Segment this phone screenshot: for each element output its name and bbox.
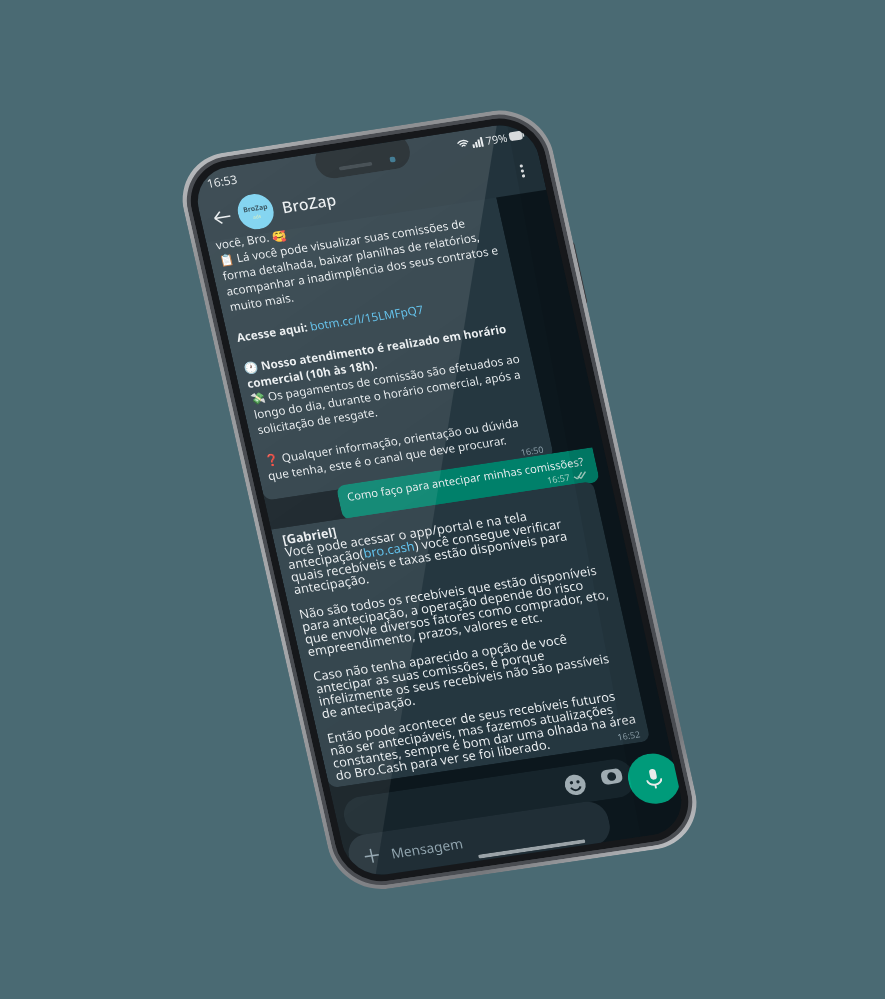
button[interactable]: Back xyxy=(204,200,239,234)
button[interactable]: [Gabriel] Você pode acessar o app/portal… xyxy=(271,481,650,788)
staticText: [Gabriel] Você pode acessar o app/portal… xyxy=(280,485,642,784)
staticText: Mensagem xyxy=(389,834,465,862)
staticText: 79% xyxy=(484,130,509,148)
staticText: 16:53 xyxy=(205,171,239,191)
staticText: BroZap xyxy=(280,189,338,218)
button[interactable]: BroZap xyxy=(234,191,277,232)
staticText: ads xyxy=(252,213,263,221)
staticText: 16:57 xyxy=(546,471,572,486)
staticText: 16:50 xyxy=(519,443,545,458)
button[interactable]: More options xyxy=(505,155,539,186)
staticText: Como faço para antecipar minhas comissõe… xyxy=(345,454,585,504)
button[interactable]: Como faço para antecipar minhas comissõe… xyxy=(336,447,600,521)
staticText: 16:52 xyxy=(616,727,642,742)
button[interactable]: Camera xyxy=(593,760,629,793)
button[interactable]: você, Bro. 🥰 📋 Lá você pode visualizar s… xyxy=(203,186,554,501)
staticText: você, Bro. 🥰 📋 Lá você pode visualizar s… xyxy=(214,195,543,483)
staticText: BroZap xyxy=(242,202,269,215)
button[interactable]: Record voice message xyxy=(623,750,682,807)
button[interactable]: Emoji xyxy=(557,768,592,801)
button[interactable]: Mensagem xyxy=(345,799,613,879)
